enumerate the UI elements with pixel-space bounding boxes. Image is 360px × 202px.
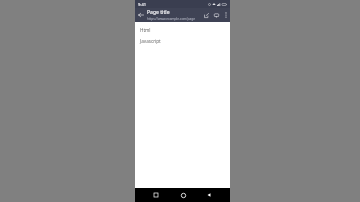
button[interactable]: More options <box>221 8 230 22</box>
staticText: Page title <box>147 9 170 16</box>
staticText: https://www.example.com/page <box>147 17 195 21</box>
button[interactable]: Back <box>135 8 147 22</box>
button[interactable]: Recent apps <box>150 189 162 201</box>
staticText: 9:41 <box>138 2 146 7</box>
button[interactable]: Share <box>201 8 211 22</box>
button[interactable]: Home <box>177 189 189 201</box>
button[interactable]: Back <box>203 189 215 201</box>
button[interactable]: Javascript <box>135 37 230 44</box>
staticText: Javascript <box>140 38 161 44</box>
staticText: Html <box>140 27 151 33</box>
button[interactable]: Html <box>135 26 230 33</box>
button[interactable]: Page title <box>147 9 201 21</box>
button[interactable]: Comments <box>211 8 221 22</box>
